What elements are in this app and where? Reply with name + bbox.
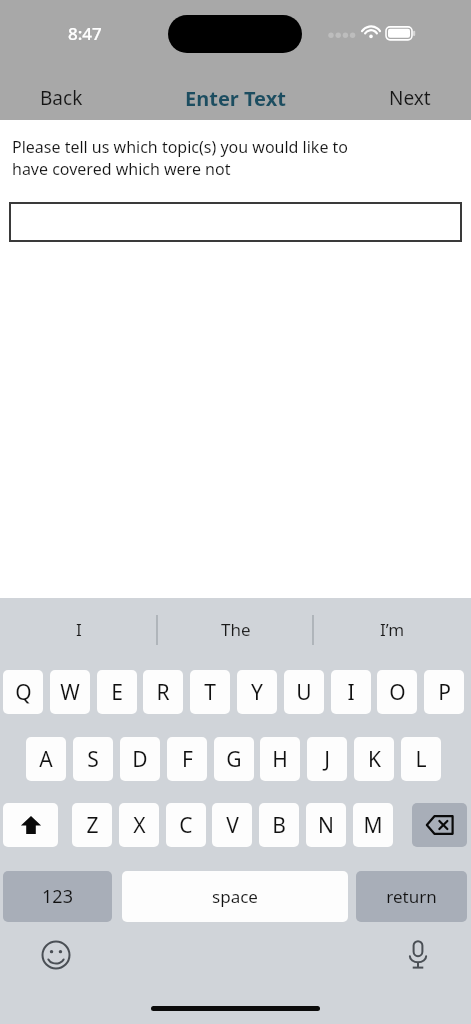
staticText: H [272, 745, 288, 774]
staticText: C [179, 811, 193, 840]
button[interactable]: space [122, 871, 348, 922]
button[interactable]: U [284, 670, 324, 714]
button[interactable]: 123 [3, 871, 112, 922]
button[interactable]: I [0, 598, 157, 660]
staticText: Enter Text [185, 85, 286, 112]
staticText: M [363, 811, 383, 840]
button[interactable]: P [424, 670, 464, 714]
staticText: A [39, 745, 53, 774]
button[interactable]: C [166, 803, 206, 847]
staticText: Z [86, 811, 99, 840]
button[interactable] [9, 202, 462, 242]
staticText: Please tell us which topic(s) you would … [12, 136, 462, 180]
button[interactable]: V [212, 803, 252, 847]
staticText: E [111, 678, 123, 707]
button[interactable]: Backspace [412, 803, 467, 847]
staticText: I’m [380, 618, 405, 641]
staticText: D [132, 745, 148, 774]
staticText: P [438, 678, 451, 707]
button[interactable]: Next [375, 79, 445, 117]
button[interactable]: I’m [314, 598, 471, 660]
staticText: O [389, 678, 406, 707]
button[interactable]: A [26, 737, 66, 781]
button[interactable]: B [259, 803, 299, 847]
staticText: I [347, 678, 355, 707]
staticText: I [76, 618, 82, 641]
staticText: B [272, 811, 286, 840]
staticText: return [386, 885, 437, 908]
button[interactable]: R [143, 670, 183, 714]
button[interactable]: Dictation [398, 935, 438, 975]
button[interactable]: T [190, 670, 230, 714]
button[interactable]: D [120, 737, 160, 781]
staticText: space [212, 885, 258, 908]
staticText: 123 [42, 884, 73, 909]
staticText: F [182, 745, 193, 774]
staticText: The [221, 618, 251, 641]
staticText: G [226, 745, 242, 774]
button[interactable]: Z [72, 803, 112, 847]
button[interactable]: G [214, 737, 254, 781]
button[interactable]: S [73, 737, 113, 781]
button[interactable]: Y [237, 670, 277, 714]
button[interactable]: The [157, 598, 314, 660]
staticText: K [368, 745, 381, 774]
button[interactable]: W [50, 670, 90, 714]
button[interactable]: N [306, 803, 346, 847]
staticText: Q [15, 678, 32, 707]
button[interactable]: O [377, 670, 417, 714]
staticText: X [133, 811, 146, 840]
staticText: R [156, 678, 170, 707]
staticText: Back [40, 85, 83, 111]
button[interactable]: I [331, 670, 371, 714]
staticText: 8:47 [68, 22, 102, 45]
button[interactable]: H [260, 737, 300, 781]
button[interactable]: E [97, 670, 137, 714]
staticText: U [296, 678, 312, 707]
button[interactable]: J [307, 737, 347, 781]
button[interactable]: X [119, 803, 159, 847]
button[interactable]: M [353, 803, 393, 847]
button[interactable]: L [401, 737, 441, 781]
button[interactable]: F [167, 737, 207, 781]
staticText: Y [251, 678, 263, 707]
staticText: J [324, 745, 330, 774]
staticText: T [204, 678, 216, 707]
button[interactable]: K [354, 737, 394, 781]
staticText: V [226, 811, 239, 840]
staticText: L [415, 745, 427, 774]
button[interactable]: Emoji [36, 935, 76, 975]
button[interactable]: Shift [3, 803, 58, 847]
staticText: N [318, 811, 334, 840]
button[interactable]: Q [3, 670, 43, 714]
staticText: Next [389, 85, 431, 111]
button[interactable]: Back [26, 79, 97, 117]
button[interactable]: return [356, 871, 467, 922]
staticText: W [60, 678, 80, 707]
staticText: S [87, 745, 99, 774]
